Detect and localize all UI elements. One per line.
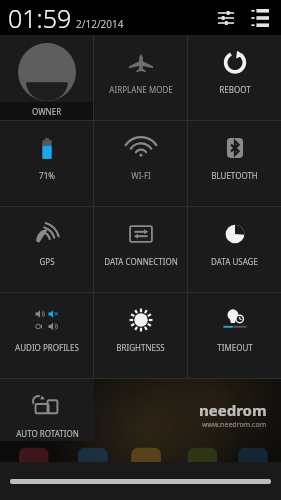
button[interactable]: AUDIO PROFILES [0,293,93,378]
staticText: BRIGHTNESS [116,342,165,353]
button[interactable]: GPS [0,207,93,292]
staticText: REBOOT [219,84,251,95]
staticText: www.needrom.com [202,420,267,430]
button[interactable]: Settings [213,5,239,31]
staticText: WI-FI [131,170,151,181]
button[interactable]: 71% [0,121,93,206]
staticText: TIMEOUT [217,342,253,353]
staticText: AUDIO PROFILES [15,342,79,353]
button[interactable]: WI-FI [94,121,187,206]
staticText: AIRPLANE MODE [109,84,173,95]
staticText: 01:59 [8,1,72,35]
button[interactable]: Notifications list [247,5,273,31]
button[interactable]: Close quick settings [0,462,281,500]
staticText: DATA USAGE [211,256,258,267]
button[interactable]: AUTO ROTATION [0,379,94,441]
button[interactable]: BRIGHTNESS [94,293,187,378]
button[interactable]: TIMEOUT [188,293,281,378]
staticText: AUTO ROTATION [16,428,79,439]
staticText: DATA CONNECTION [104,256,178,267]
button[interactable]: AIRPLANE MODE [94,35,187,120]
button[interactable]: DATA CONNECTION [94,207,187,292]
button[interactable]: DATA USAGE [188,207,281,292]
staticText: BLUETOOTH [211,170,258,181]
staticText: OWNER [32,106,62,117]
staticText: 71% [39,170,55,181]
staticText: GPS [39,256,55,267]
staticText: 2/12/2014 [76,17,124,31]
button[interactable]: REBOOT [188,35,281,120]
staticText: needrom [199,400,267,420]
button[interactable]: BLUETOOTH [188,121,281,206]
button[interactable]: OWNER [0,35,93,120]
